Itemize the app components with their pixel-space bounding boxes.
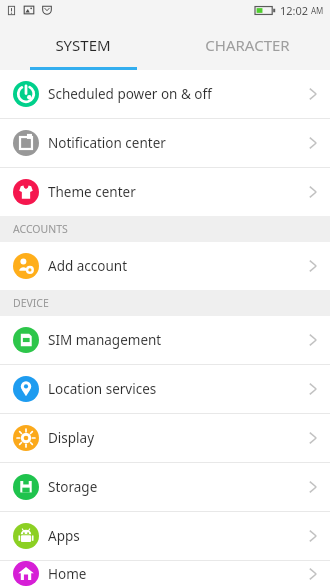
- staticText: AM: [311, 5, 324, 16]
- staticText: Location services: [48, 380, 157, 398]
- staticText: Apps: [48, 527, 80, 545]
- button[interactable]: Home: [0, 561, 330, 586]
- staticText: Storage: [48, 478, 98, 496]
- button[interactable]: Notification center: [0, 119, 330, 167]
- button[interactable]: Display: [0, 414, 330, 462]
- staticText: Notification center: [48, 134, 166, 152]
- staticText: Home: [48, 565, 87, 583]
- staticText: Display: [48, 429, 95, 447]
- staticText: 12:02: [280, 3, 309, 18]
- button[interactable]: Apps: [0, 512, 330, 560]
- button[interactable]: Theme center: [0, 168, 330, 216]
- button[interactable]: SIM management: [0, 316, 330, 364]
- button[interactable]: Scheduled power on & off: [0, 70, 330, 118]
- button[interactable]: CHARACTER: [165, 20, 330, 70]
- button[interactable]: SYSTEM: [0, 20, 165, 70]
- button[interactable]: Location services: [0, 365, 330, 413]
- staticText: ACCOUNTS: [13, 222, 68, 236]
- staticText: Theme center: [48, 183, 136, 201]
- staticText: SIM management: [48, 331, 162, 349]
- staticText: Add account: [48, 257, 128, 275]
- staticText: DEVICE: [13, 296, 49, 310]
- staticText: SYSTEM: [55, 35, 111, 55]
- staticText: CHARACTER: [205, 35, 290, 55]
- button[interactable]: Storage: [0, 463, 330, 511]
- button[interactable]: Add account: [0, 242, 330, 290]
- staticText: Scheduled power on & off: [48, 85, 212, 103]
